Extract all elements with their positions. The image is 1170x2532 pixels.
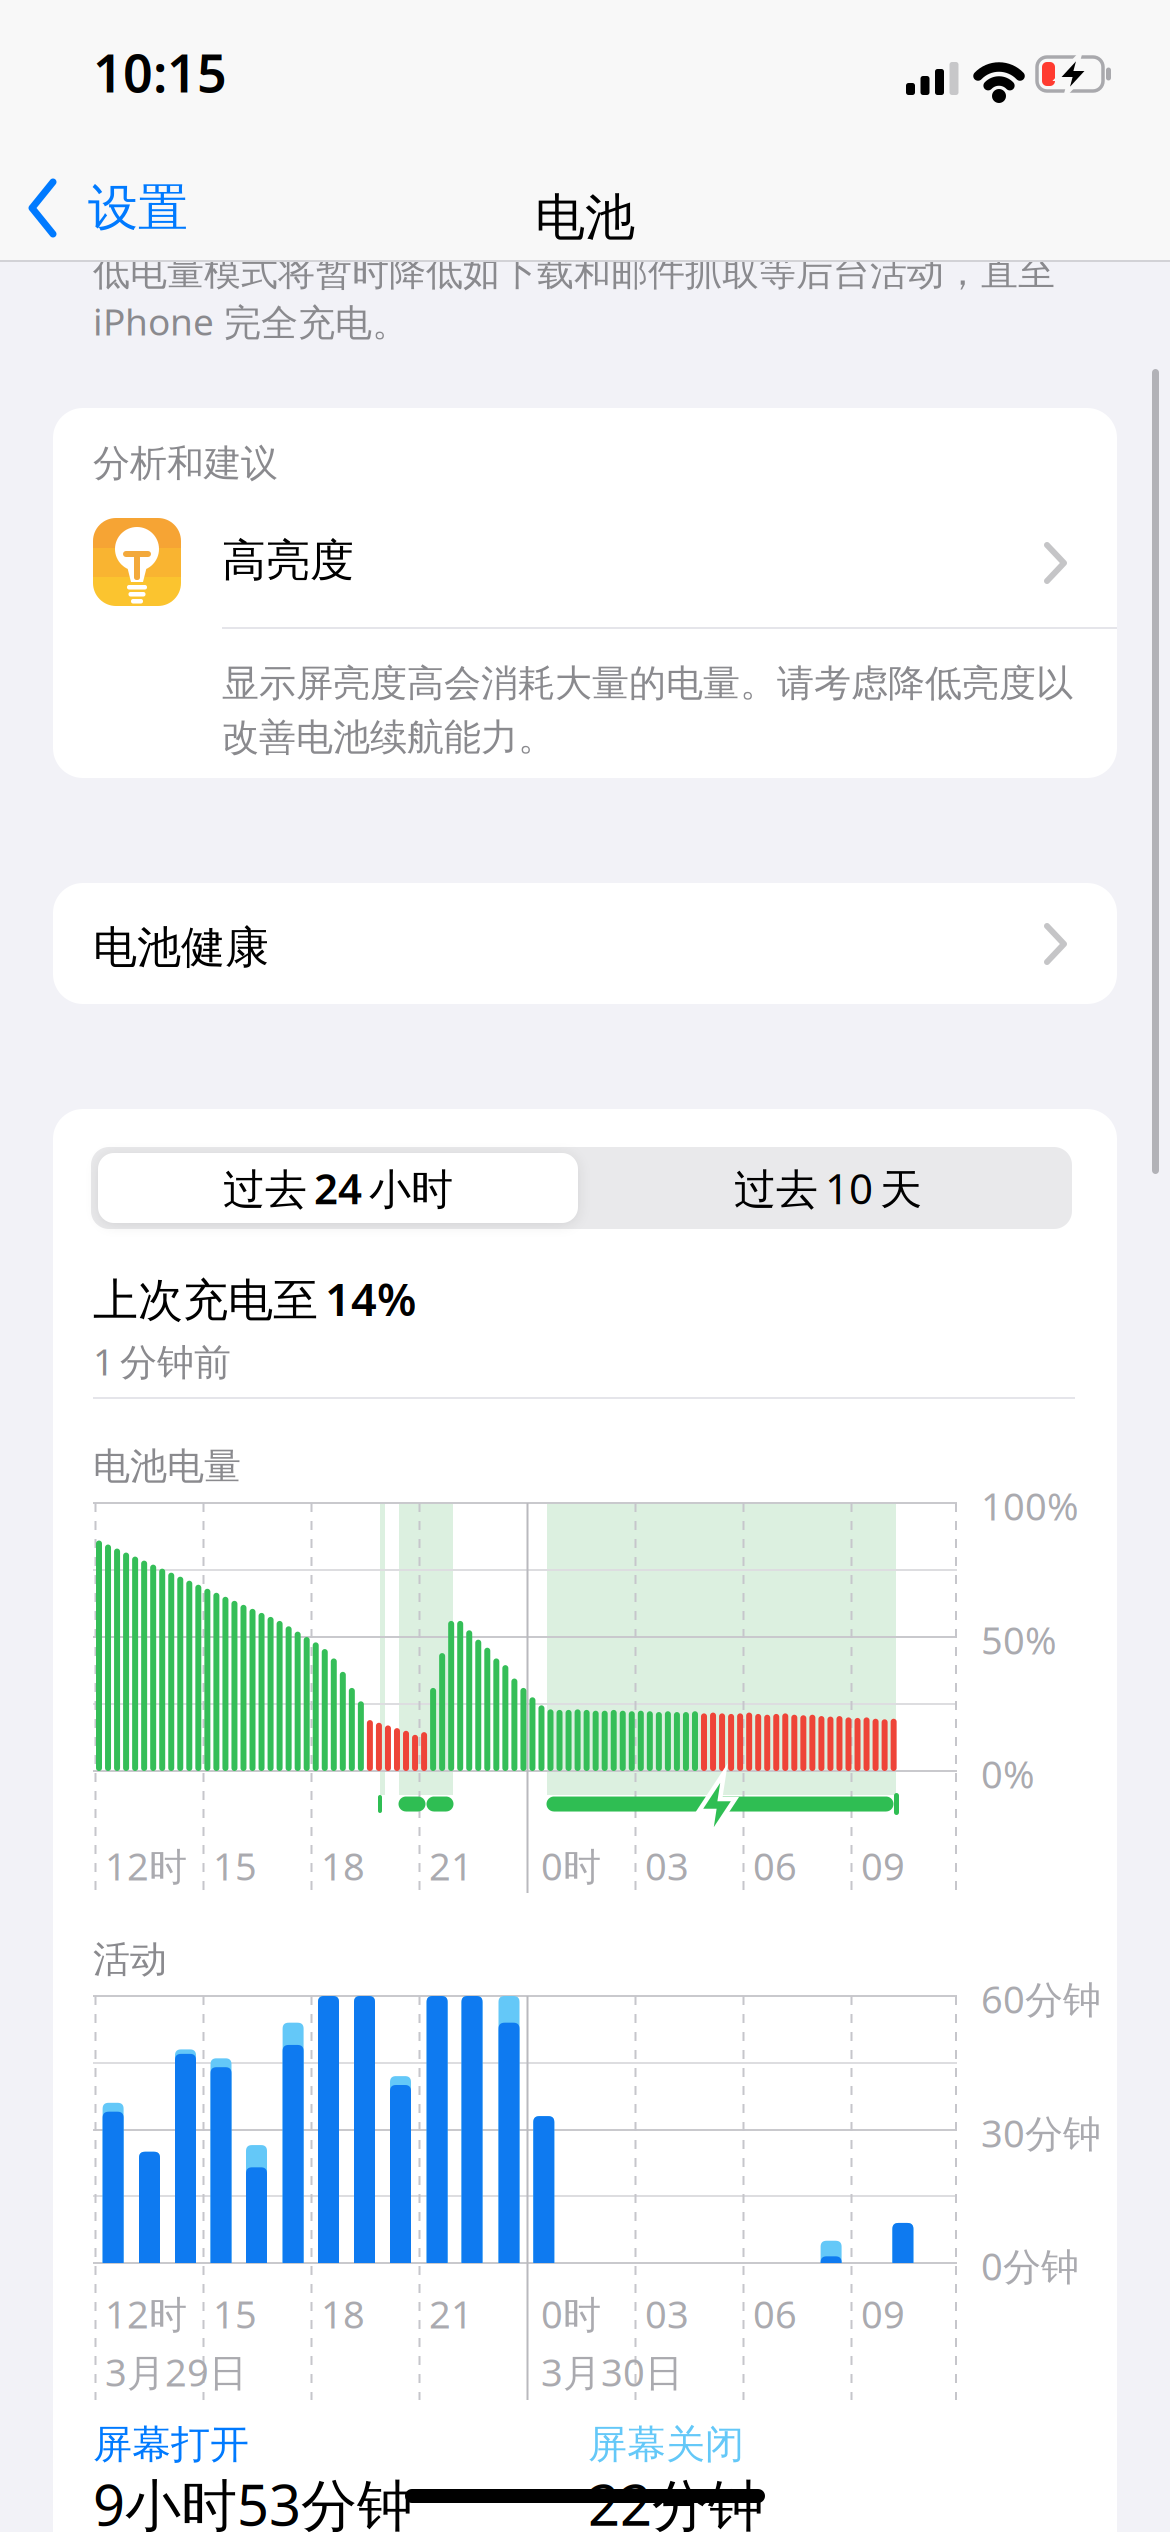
- staticText: 06: [753, 1840, 797, 1892]
- staticText: 3月29日: [105, 2346, 247, 2398]
- staticText: 显示屏亮度高会消耗大量的电量。请考虑降低亮度以: [222, 660, 1073, 707]
- staticText: 22分钟: [588, 2466, 764, 2532]
- staticText: 屏幕打开: [93, 2420, 249, 2469]
- staticText: 活动: [93, 1936, 167, 1983]
- staticText: 电池电量: [93, 1443, 241, 1490]
- staticText: 12时: [105, 1840, 187, 1892]
- button[interactable]: 过去 10 天: [588, 1153, 1068, 1223]
- staticText: 06: [753, 2288, 797, 2340]
- staticText: 过去 24 小时: [223, 1159, 453, 1217]
- staticText: 设置: [88, 176, 188, 239]
- staticText: 100%: [981, 1480, 1079, 1532]
- staticText: 21: [429, 1840, 473, 1892]
- staticText: 0分钟: [981, 2240, 1079, 2292]
- staticText: 10:15: [93, 37, 227, 108]
- staticText: 0时: [541, 2288, 601, 2340]
- staticText: 03: [645, 1840, 689, 1892]
- button[interactable]: 高亮度: [53, 500, 1117, 624]
- staticText: 改善电池续航能力。: [222, 714, 555, 761]
- staticText: 18: [321, 2288, 365, 2340]
- staticText: 3月30日: [541, 2346, 683, 2398]
- staticText: 0时: [541, 1840, 601, 1892]
- staticText: 低电量模式将暂时降低如下载和邮件抓取等后台活动，直至: [93, 249, 1055, 296]
- staticText: 0%: [981, 1748, 1035, 1800]
- staticText: 电池健康: [93, 920, 269, 975]
- staticText: 60分钟: [981, 1973, 1101, 2025]
- staticText: 50%: [981, 1614, 1057, 1666]
- button[interactable]: 电池健康: [53, 883, 1117, 1004]
- staticText: 上次充电至 14%: [93, 1268, 416, 1329]
- staticText: 15: [213, 1840, 257, 1892]
- button[interactable]: 设置: [27, 178, 188, 238]
- staticText: 03: [645, 2288, 689, 2340]
- staticText: 30分钟: [981, 2107, 1101, 2159]
- staticText: 09: [861, 1840, 905, 1892]
- button[interactable]: 过去 24 小时: [98, 1153, 578, 1223]
- staticText: 屏幕关闭: [588, 2420, 744, 2469]
- staticText: 高亮度: [222, 533, 354, 588]
- staticText: 1 分钟前: [93, 1336, 231, 1386]
- staticText: 12时: [105, 2288, 187, 2340]
- staticText: 分析和建议: [93, 440, 278, 487]
- staticText: 15: [213, 2288, 257, 2340]
- staticText: 21: [429, 2288, 473, 2340]
- staticText: 过去 10 天: [734, 1159, 922, 1217]
- staticText: 09: [861, 2288, 905, 2340]
- staticText: 9小时53分钟: [93, 2466, 413, 2532]
- staticText: 电池: [535, 186, 635, 249]
- staticText: 18: [321, 1840, 365, 1892]
- staticText: iPhone 完全充电。: [93, 296, 409, 346]
